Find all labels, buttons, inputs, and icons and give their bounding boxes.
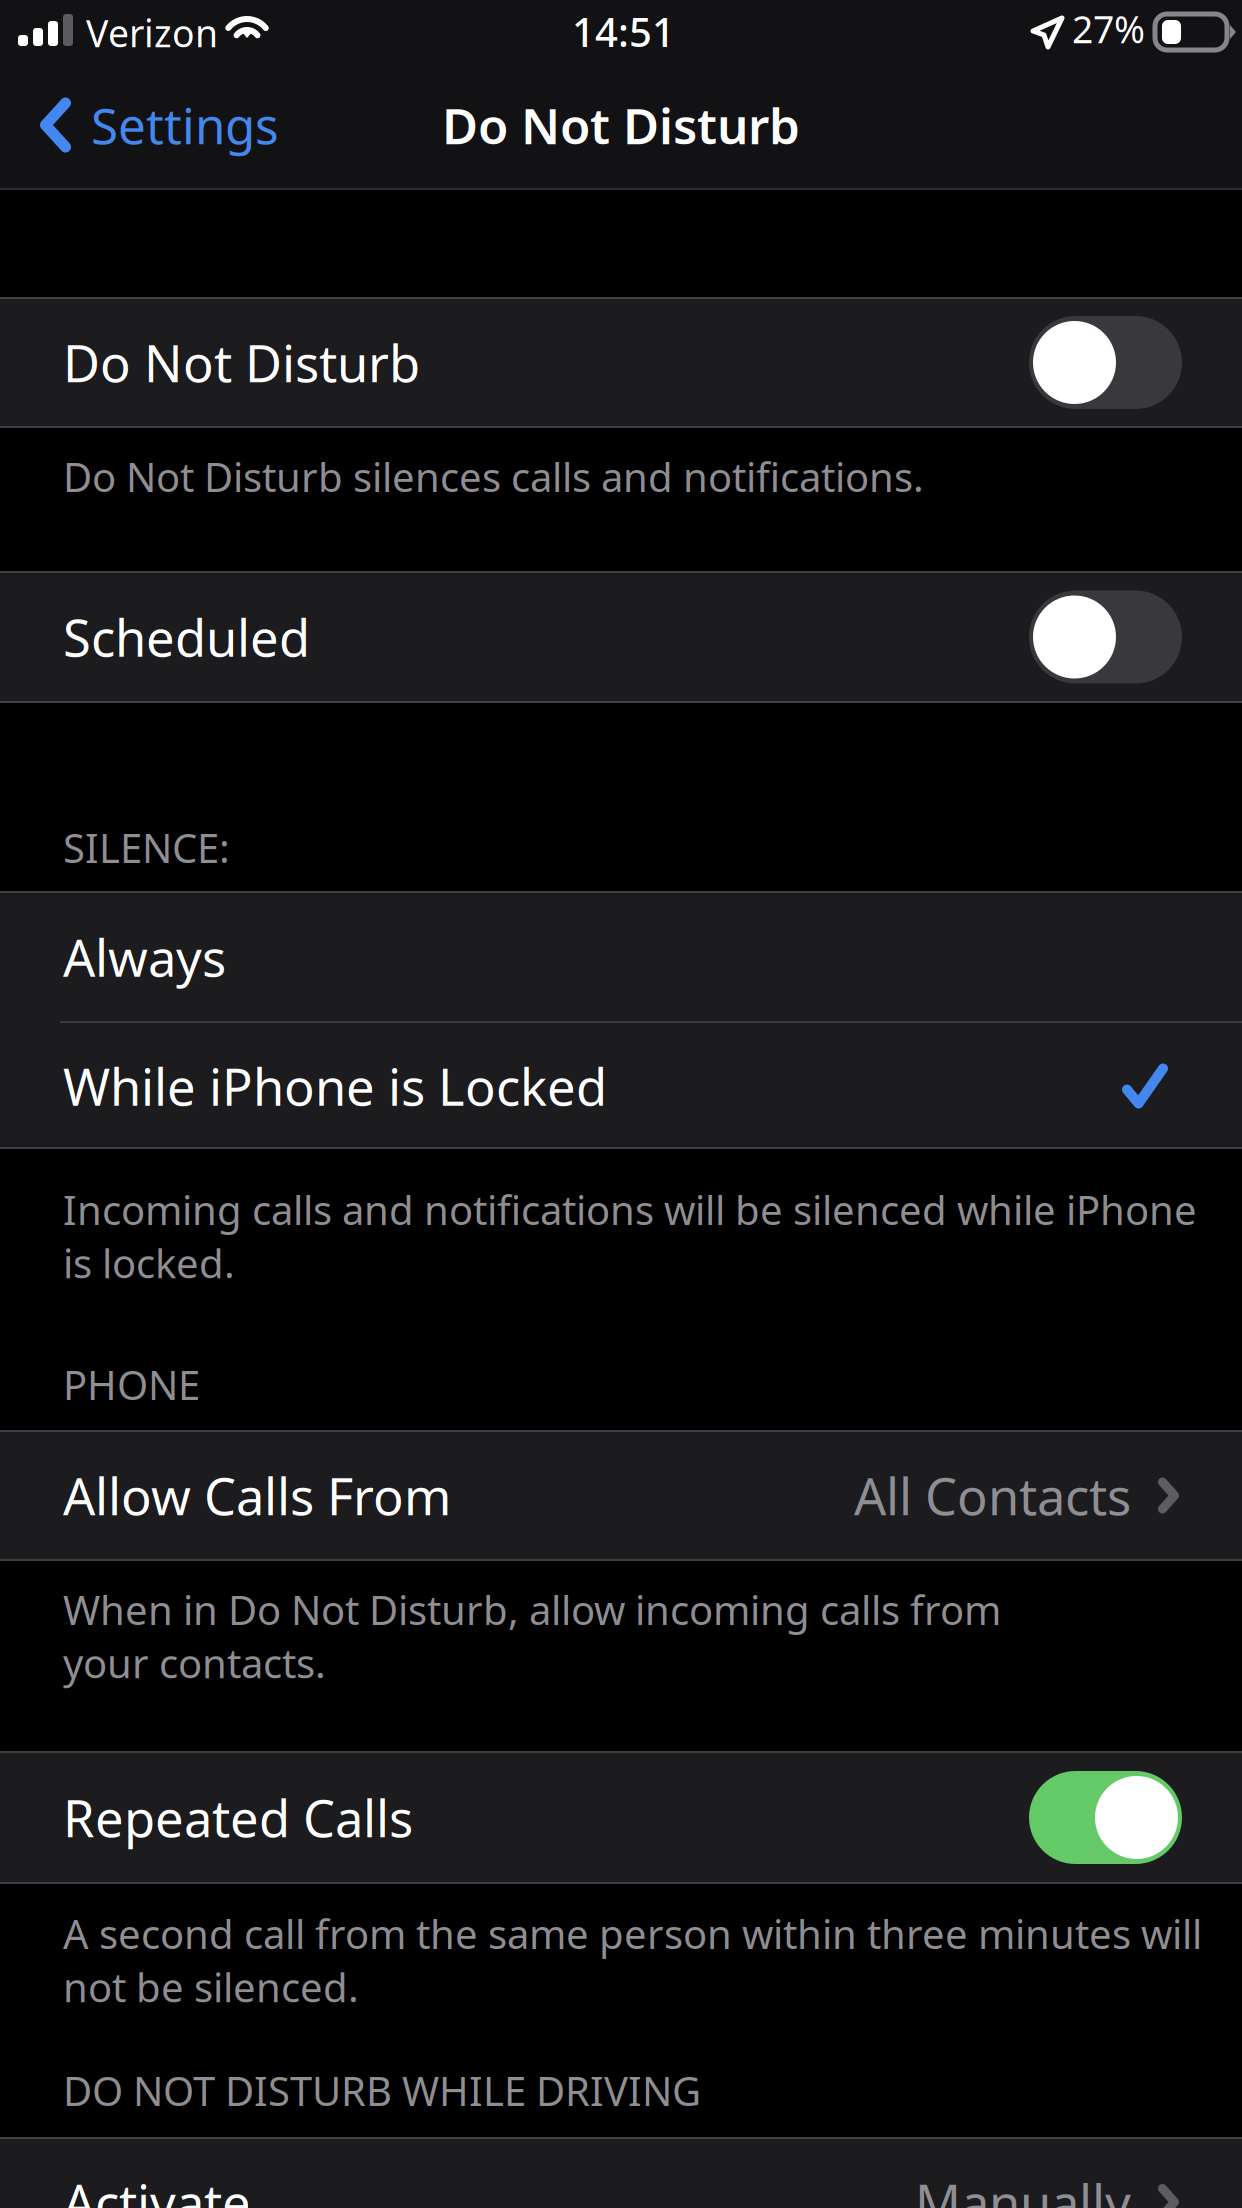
staticText: Scheduled xyxy=(63,603,310,671)
staticText: PHONE xyxy=(63,1358,200,1411)
button[interactable]: Settings xyxy=(0,70,315,180)
staticText: All Contacts xyxy=(854,1462,1131,1529)
staticText: Repeated Calls xyxy=(63,1784,413,1851)
staticText: Incoming calls and notifications will be… xyxy=(63,1183,1197,1289)
button[interactable]: Scheduled xyxy=(0,571,1242,703)
staticText: Settings xyxy=(91,92,279,158)
button[interactable]: Allow Calls From xyxy=(0,1430,1242,1561)
staticText: 27% xyxy=(1072,4,1145,54)
staticText: Do Not Disturb silences calls and notifi… xyxy=(63,450,924,503)
staticText: A second call from the same person withi… xyxy=(63,1907,1202,2013)
staticText: When in Do Not Disturb, allow incoming c… xyxy=(63,1583,1001,1689)
staticText: Verizon xyxy=(86,8,218,58)
staticText: 14:51 xyxy=(572,5,675,58)
button[interactable]: Activate xyxy=(0,2137,1242,2208)
staticText: Do Not Disturb xyxy=(442,92,800,158)
button[interactable]: Repeated Calls xyxy=(0,1751,1242,1884)
staticText: Always xyxy=(63,923,226,991)
staticText: DO NOT DISTURB WHILE DRIVING xyxy=(63,2064,701,2117)
staticText: Manually xyxy=(915,2168,1131,2208)
button[interactable]: While iPhone is Locked xyxy=(0,1023,1242,1149)
staticText: Activate xyxy=(63,2168,251,2208)
staticText: Do Not Disturb xyxy=(63,329,420,396)
button[interactable]: Do Not Disturb xyxy=(0,297,1242,428)
staticText: While iPhone is Locked xyxy=(63,1052,607,1120)
staticText: SILENCE: xyxy=(63,821,230,874)
staticText: Allow Calls From xyxy=(63,1462,451,1529)
button[interactable]: Always xyxy=(0,891,1242,1023)
